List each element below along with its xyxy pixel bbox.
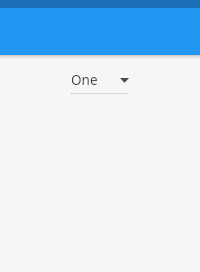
button[interactable]: One, dropdown	[71, 71, 129, 94]
staticText: One	[71, 71, 98, 89]
